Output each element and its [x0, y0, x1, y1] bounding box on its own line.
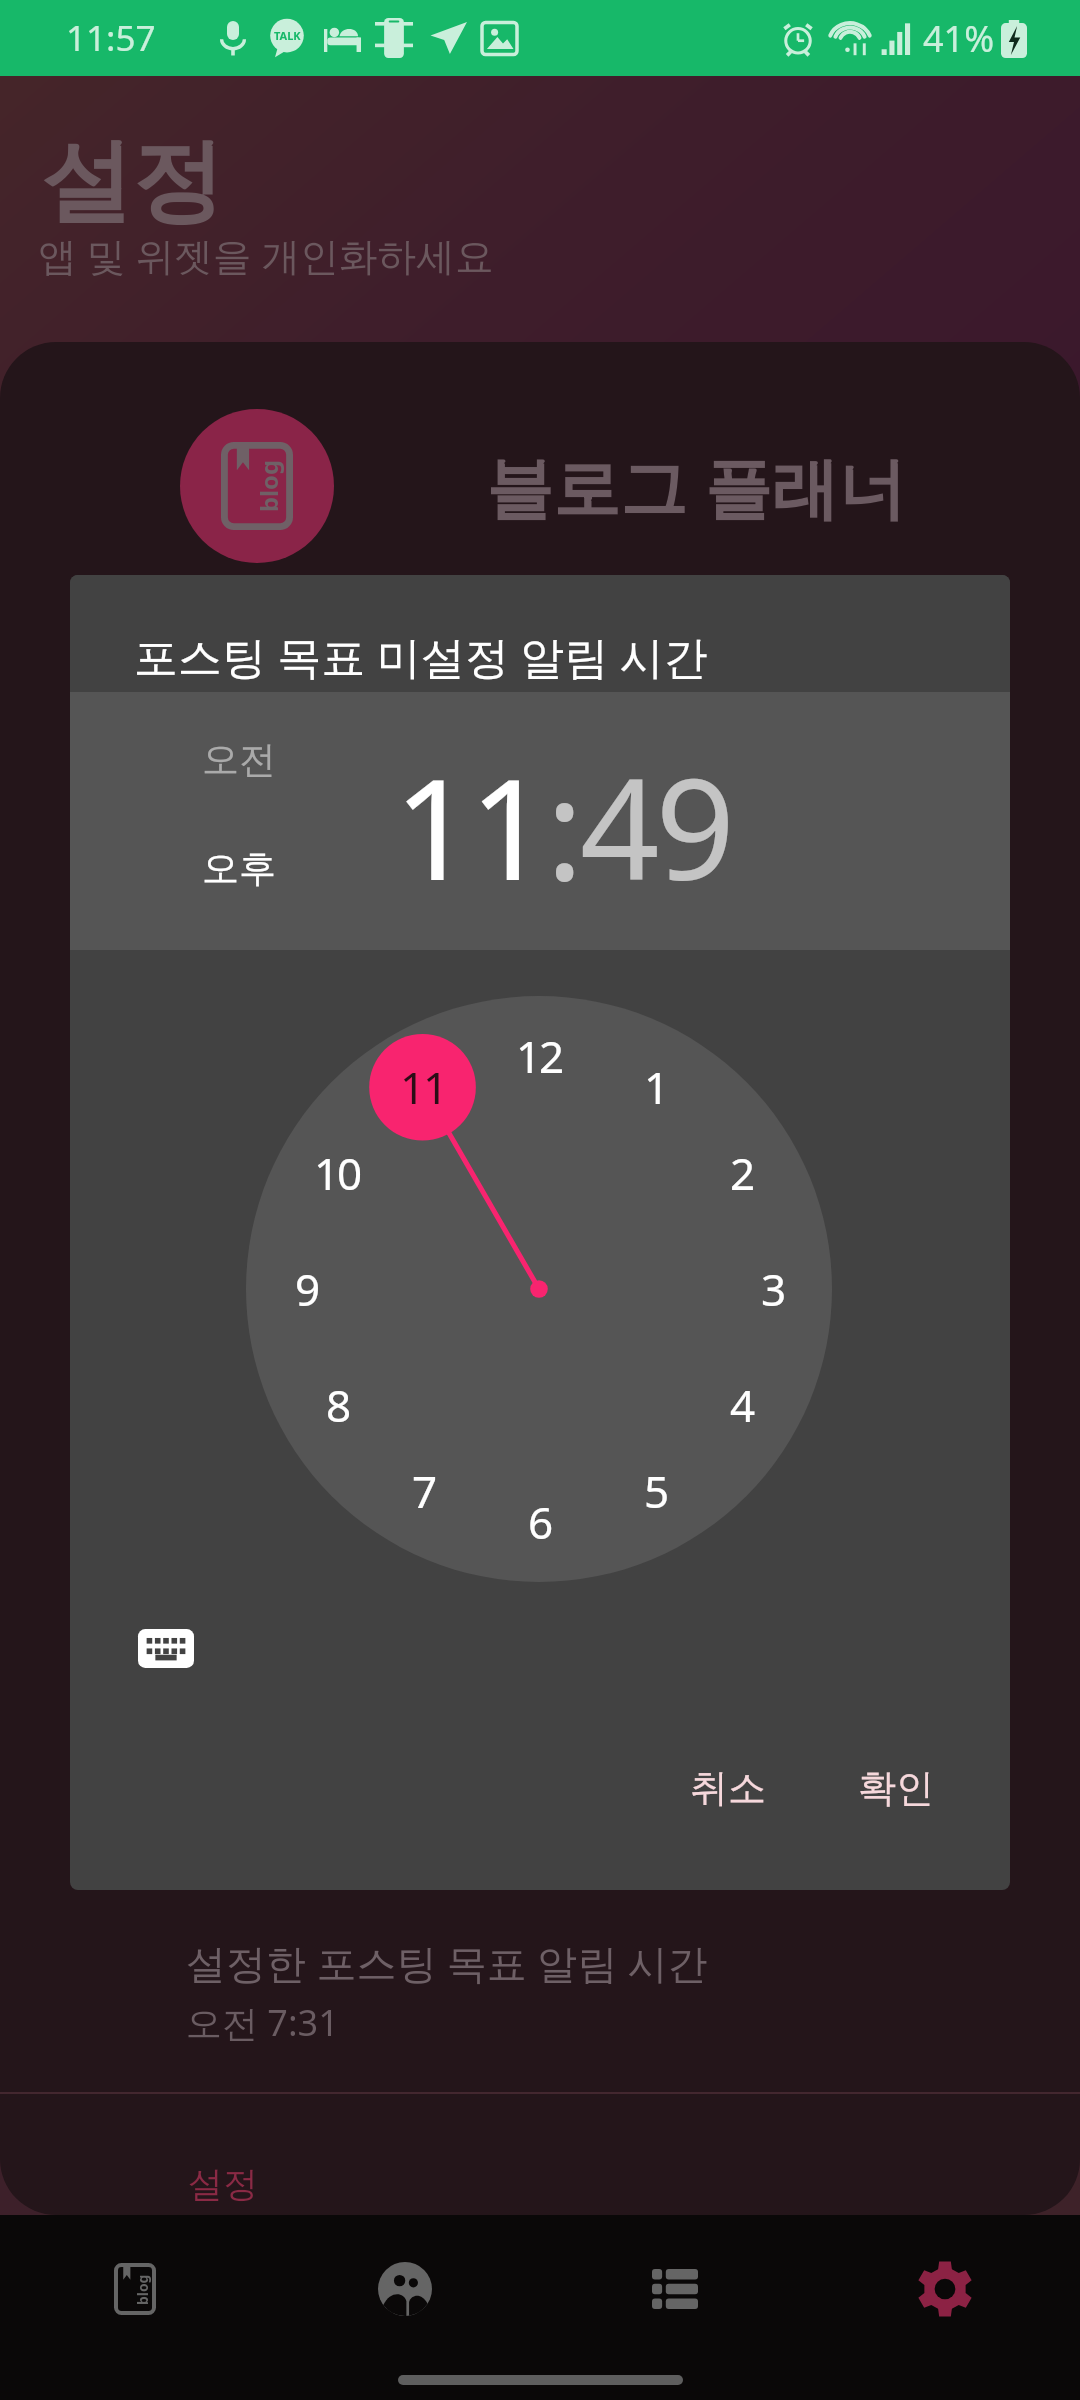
staticText: 7	[412, 1461, 435, 1521]
staticText: 4	[730, 1375, 753, 1435]
button[interactable]: Switch to keyboard input	[130, 1620, 202, 1676]
staticText: 8	[326, 1375, 349, 1435]
staticText: 오후	[202, 845, 276, 892]
staticText: :	[546, 731, 580, 920]
staticText: blog	[133, 2274, 152, 2305]
staticText: 2	[730, 1143, 753, 1203]
staticText: 앱 및 위젯을 개인화하세요	[38, 229, 494, 282]
button[interactable]: 49	[580, 731, 732, 920]
button[interactable]: 11	[394, 731, 546, 920]
staticText: 5	[644, 1461, 667, 1521]
staticText: TALK	[274, 28, 301, 43]
staticText: 6	[528, 1492, 551, 1552]
staticText: 블로그 플래너	[486, 440, 906, 532]
button[interactable]: List	[540, 2215, 810, 2363]
staticText: 1	[644, 1057, 667, 1117]
button[interactable]: Blog	[0, 2215, 270, 2363]
staticText: 3	[761, 1259, 784, 1319]
staticText: 11	[400, 1057, 446, 1117]
staticText: 확인	[858, 1764, 934, 1812]
staticText: 포스팅 목표 미설정 알림 시간	[134, 626, 708, 686]
staticText: 9	[295, 1259, 318, 1319]
staticText: 11:57	[66, 14, 156, 62]
staticText: 12	[516, 1026, 562, 1086]
staticText: blog	[253, 460, 285, 512]
button[interactable]: 확인	[836, 1748, 956, 1828]
staticText: 설정	[188, 2162, 258, 2206]
staticText: 10	[314, 1143, 360, 1203]
staticText: 취소	[690, 1764, 766, 1812]
button[interactable]: 오전	[182, 720, 296, 799]
button[interactable]: 취소	[668, 1748, 788, 1828]
staticText: 설정	[41, 124, 223, 239]
button[interactable]: Settings	[810, 2215, 1080, 2363]
button[interactable]: 오후	[182, 829, 296, 908]
staticText: 설정한 포스팅 목표 알림 시간	[186, 1935, 708, 1990]
button[interactable]: 설정한 포스팅 목표 알림 시간	[0, 1887, 1080, 2047]
staticText: 오전 7:31	[186, 1998, 339, 2047]
staticText: 11	[394, 731, 546, 920]
staticText: 오전	[202, 736, 276, 783]
staticText: 41%	[923, 14, 995, 63]
staticText: 49	[580, 731, 732, 920]
button[interactable]: Friends	[270, 2215, 540, 2363]
